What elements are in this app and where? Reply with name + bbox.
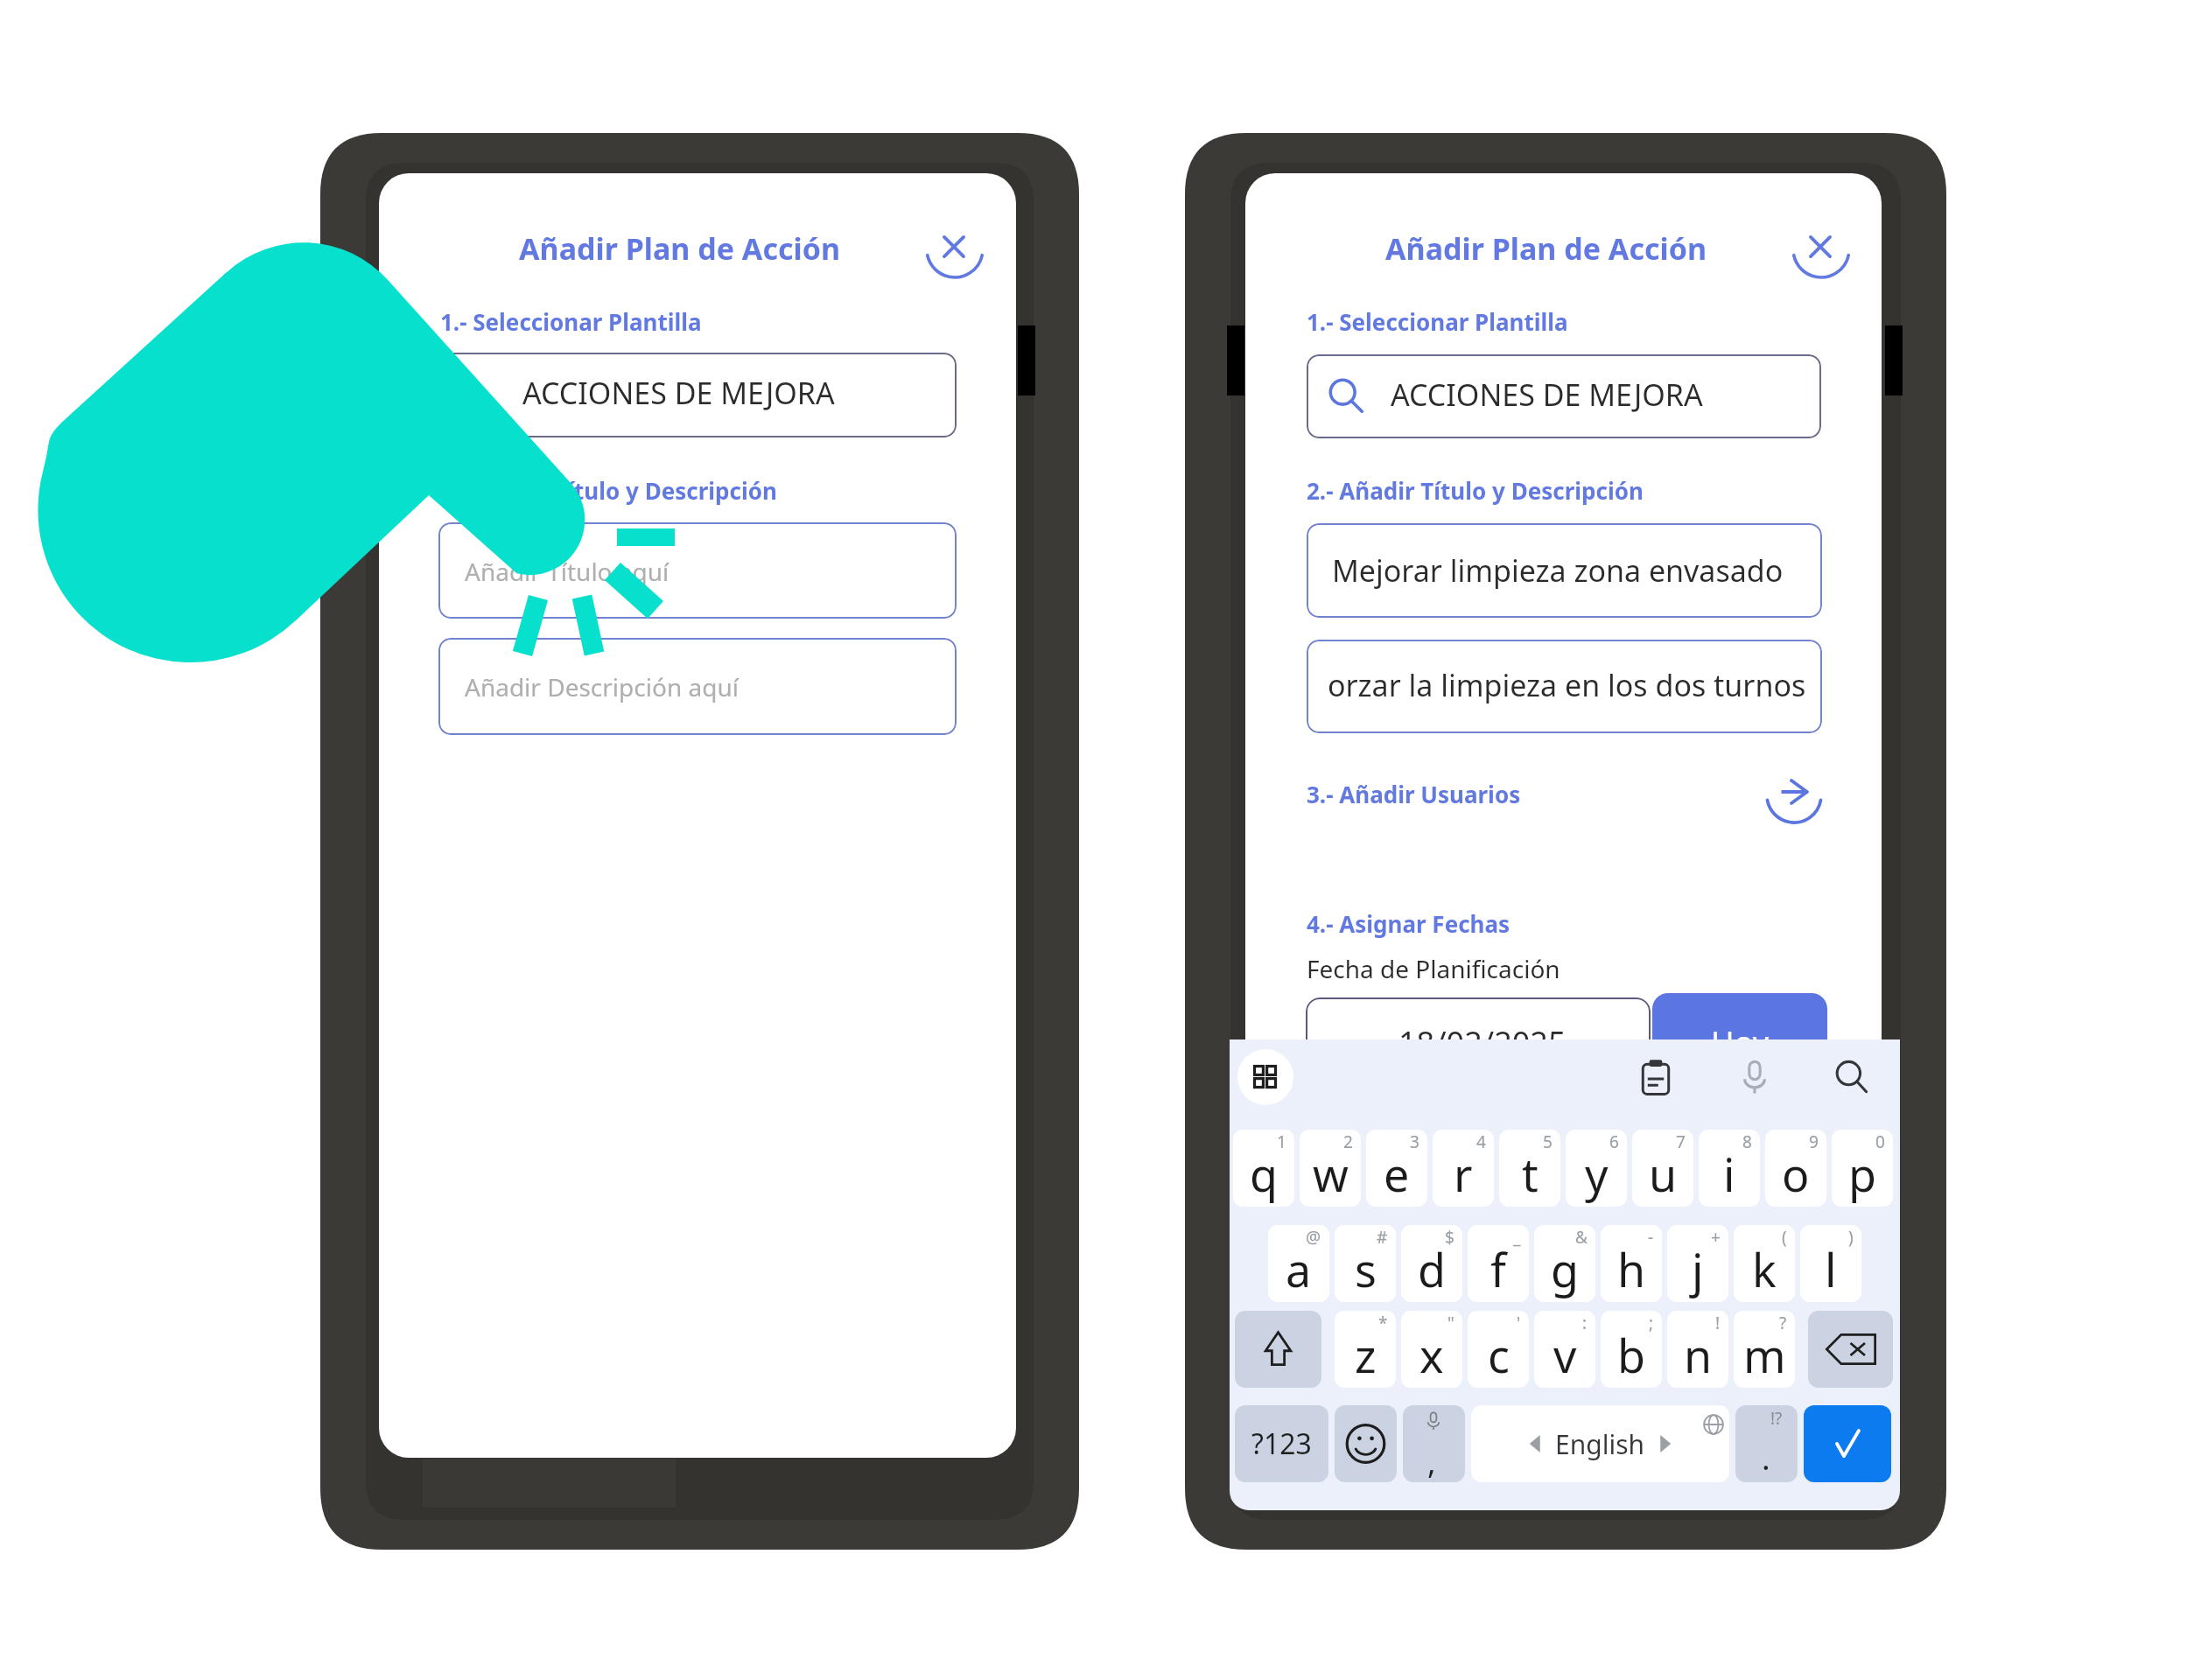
button[interactable]: m — [1734, 1311, 1795, 1388]
button[interactable]: p — [1832, 1130, 1893, 1207]
staticText: @ — [1306, 1226, 1321, 1249]
staticText: g — [1551, 1238, 1579, 1300]
staticText: 5 — [1543, 1130, 1553, 1153]
button[interactable]: Hoy — [1652, 993, 1827, 1102]
staticText: j — [1692, 1238, 1704, 1300]
staticText: # — [1377, 1226, 1388, 1249]
staticText: 1.- Seleccionar Plantilla — [1307, 306, 1568, 337]
staticText: _ — [1513, 1226, 1521, 1249]
button[interactable]: t — [1499, 1130, 1560, 1207]
button[interactable]: i — [1699, 1130, 1760, 1207]
staticText: z — [1355, 1324, 1377, 1386]
staticText: 4 — [1476, 1130, 1486, 1153]
button[interactable]: x — [1401, 1311, 1462, 1388]
staticText: y — [1585, 1143, 1609, 1205]
button[interactable]: , — [1403, 1405, 1465, 1482]
button[interactable]: Emoji — [1335, 1405, 1397, 1482]
staticText: 2.- Añadir Título y Descripción — [1307, 475, 1644, 506]
staticText: 18/02/2025 — [1398, 1021, 1567, 1064]
button[interactable]: Cerrar — [1784, 210, 1854, 280]
button[interactable]: ACCIONES DE MEJORA — [440, 353, 957, 437]
button[interactable]: . — [1735, 1405, 1798, 1482]
staticText: 6 — [1609, 1130, 1619, 1153]
staticText: v — [1553, 1324, 1577, 1386]
button[interactable]: Mejorar limpieza zona envasado — [1307, 523, 1822, 618]
button[interactable]: 18/02/2025 — [1306, 997, 1651, 1102]
button[interactable]: u — [1632, 1130, 1693, 1207]
button[interactable]: b — [1601, 1311, 1662, 1388]
button[interactable]: Añadir Título aquí — [438, 522, 957, 619]
staticText: !? — [1770, 1407, 1783, 1430]
button[interactable]: n — [1667, 1311, 1728, 1388]
staticText: l — [1825, 1238, 1837, 1300]
button[interactable]: English — [1471, 1405, 1729, 1482]
staticText: ; — [1649, 1312, 1654, 1334]
staticText: ( — [1782, 1226, 1787, 1249]
button[interactable]: Portapapeles — [1636, 1058, 1676, 1098]
staticText: 2 — [1343, 1130, 1353, 1153]
staticText: orzar la limpieza en los dos turnos — [1328, 665, 1806, 705]
staticText: 8 — [1742, 1130, 1752, 1153]
staticText: 1.- Seleccionar Plantilla — [440, 306, 702, 337]
button[interactable]: c — [1468, 1311, 1529, 1388]
staticText: h — [1617, 1238, 1646, 1300]
button[interactable]: k — [1734, 1225, 1795, 1302]
staticText: k — [1752, 1238, 1777, 1300]
staticText: $ — [1445, 1226, 1454, 1249]
button[interactable]: ?123 — [1235, 1405, 1328, 1482]
staticText: a — [1286, 1238, 1312, 1300]
staticText: u — [1649, 1143, 1678, 1205]
staticText: o — [1782, 1143, 1810, 1205]
button[interactable]: r — [1433, 1130, 1494, 1207]
staticText: ) — [1848, 1226, 1854, 1249]
staticText: 2.- Añadir Título y Descripción — [440, 475, 777, 506]
staticText: - — [1648, 1226, 1654, 1249]
staticText: . — [1762, 1437, 1770, 1480]
button[interactable]: Cerrar — [918, 210, 988, 280]
staticText: , — [1427, 1440, 1436, 1482]
button[interactable]: l — [1800, 1225, 1861, 1302]
button[interactable]: j — [1667, 1225, 1728, 1302]
staticText: ACCIONES DE MEJORA — [1391, 374, 1703, 415]
staticText: ! — [1715, 1312, 1721, 1334]
staticText: Añadir Plan de Acción — [1385, 228, 1707, 269]
button[interactable]: f — [1468, 1225, 1529, 1302]
staticText: p — [1848, 1143, 1876, 1205]
staticText: m — [1743, 1324, 1786, 1386]
button[interactable]: q — [1233, 1130, 1294, 1207]
staticText: ACCIONES DE MEJORA — [522, 373, 835, 413]
staticText: i — [1723, 1143, 1735, 1205]
staticText: * — [1378, 1312, 1388, 1334]
button[interactable]: y — [1566, 1130, 1627, 1207]
button[interactable]: g — [1534, 1225, 1595, 1302]
button[interactable]: w — [1300, 1130, 1361, 1207]
button[interactable]: z — [1335, 1311, 1396, 1388]
button[interactable]: Borrar — [1808, 1311, 1893, 1388]
button[interactable]: Aceptar — [1804, 1405, 1891, 1482]
button[interactable]: s — [1335, 1225, 1396, 1302]
button[interactable]: Añadir usuarios — [1765, 766, 1830, 831]
staticText: n — [1684, 1324, 1713, 1386]
button[interactable]: orzar la limpieza en los dos turnos — [1307, 640, 1822, 733]
staticText: ? — [1779, 1312, 1787, 1334]
staticText: Añadir Título aquí — [465, 555, 669, 588]
button[interactable]: h — [1601, 1225, 1662, 1302]
staticText: c — [1488, 1324, 1510, 1386]
button[interactable]: Añadir Descripción aquí — [438, 638, 957, 735]
button[interactable]: ACCIONES DE MEJORA — [1307, 354, 1821, 438]
staticText: Añadir Plan de Acción — [519, 228, 840, 269]
button[interactable]: Cambiar teclado — [1237, 1049, 1293, 1105]
staticText: 4.- Asignar Fechas — [1307, 908, 1511, 939]
button[interactable]: a — [1268, 1225, 1329, 1302]
button[interactable]: d — [1401, 1225, 1462, 1302]
staticText: : — [1582, 1312, 1588, 1334]
staticText: ' — [1517, 1312, 1521, 1334]
button[interactable]: Mayúsculas — [1235, 1311, 1321, 1388]
staticText: s — [1355, 1238, 1377, 1300]
button[interactable]: e — [1366, 1130, 1427, 1207]
button[interactable]: Dictado por voz — [1735, 1058, 1774, 1096]
button[interactable]: v — [1534, 1311, 1595, 1388]
button[interactable]: o — [1765, 1130, 1826, 1207]
button[interactable]: Buscar — [1832, 1058, 1870, 1096]
staticText: d — [1418, 1238, 1446, 1300]
